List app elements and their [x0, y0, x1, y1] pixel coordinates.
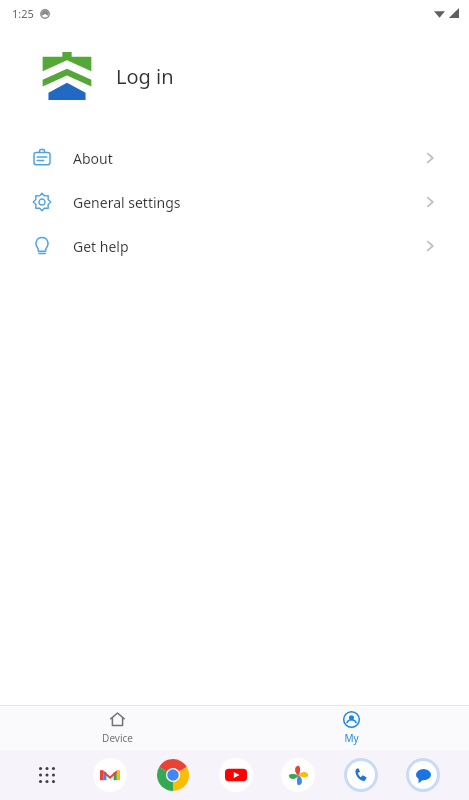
- button[interactable]: Device: [0, 706, 234, 750]
- button[interactable]: All apps: [29, 757, 65, 793]
- button[interactable]: Chrome: [156, 758, 190, 792]
- staticText: General settings: [73, 193, 181, 212]
- button[interactable]: My: [234, 706, 469, 750]
- button[interactable]: Gmail: [93, 758, 127, 792]
- staticText: My: [344, 731, 359, 745]
- button[interactable]: Log in: [116, 63, 174, 90]
- button[interactable]: YouTube: [219, 758, 253, 792]
- button[interactable]: General settings: [14, 180, 455, 224]
- staticText: About: [73, 149, 113, 168]
- staticText: 1:25: [12, 6, 34, 21]
- staticText: Get help: [73, 237, 129, 256]
- button[interactable]: Messages: [406, 758, 440, 792]
- button[interactable]: Photos: [281, 758, 315, 792]
- button[interactable]: Phone: [344, 758, 378, 792]
- staticText: Device: [102, 731, 133, 745]
- button[interactable]: Get help: [14, 224, 455, 268]
- button[interactable]: About: [14, 136, 455, 180]
